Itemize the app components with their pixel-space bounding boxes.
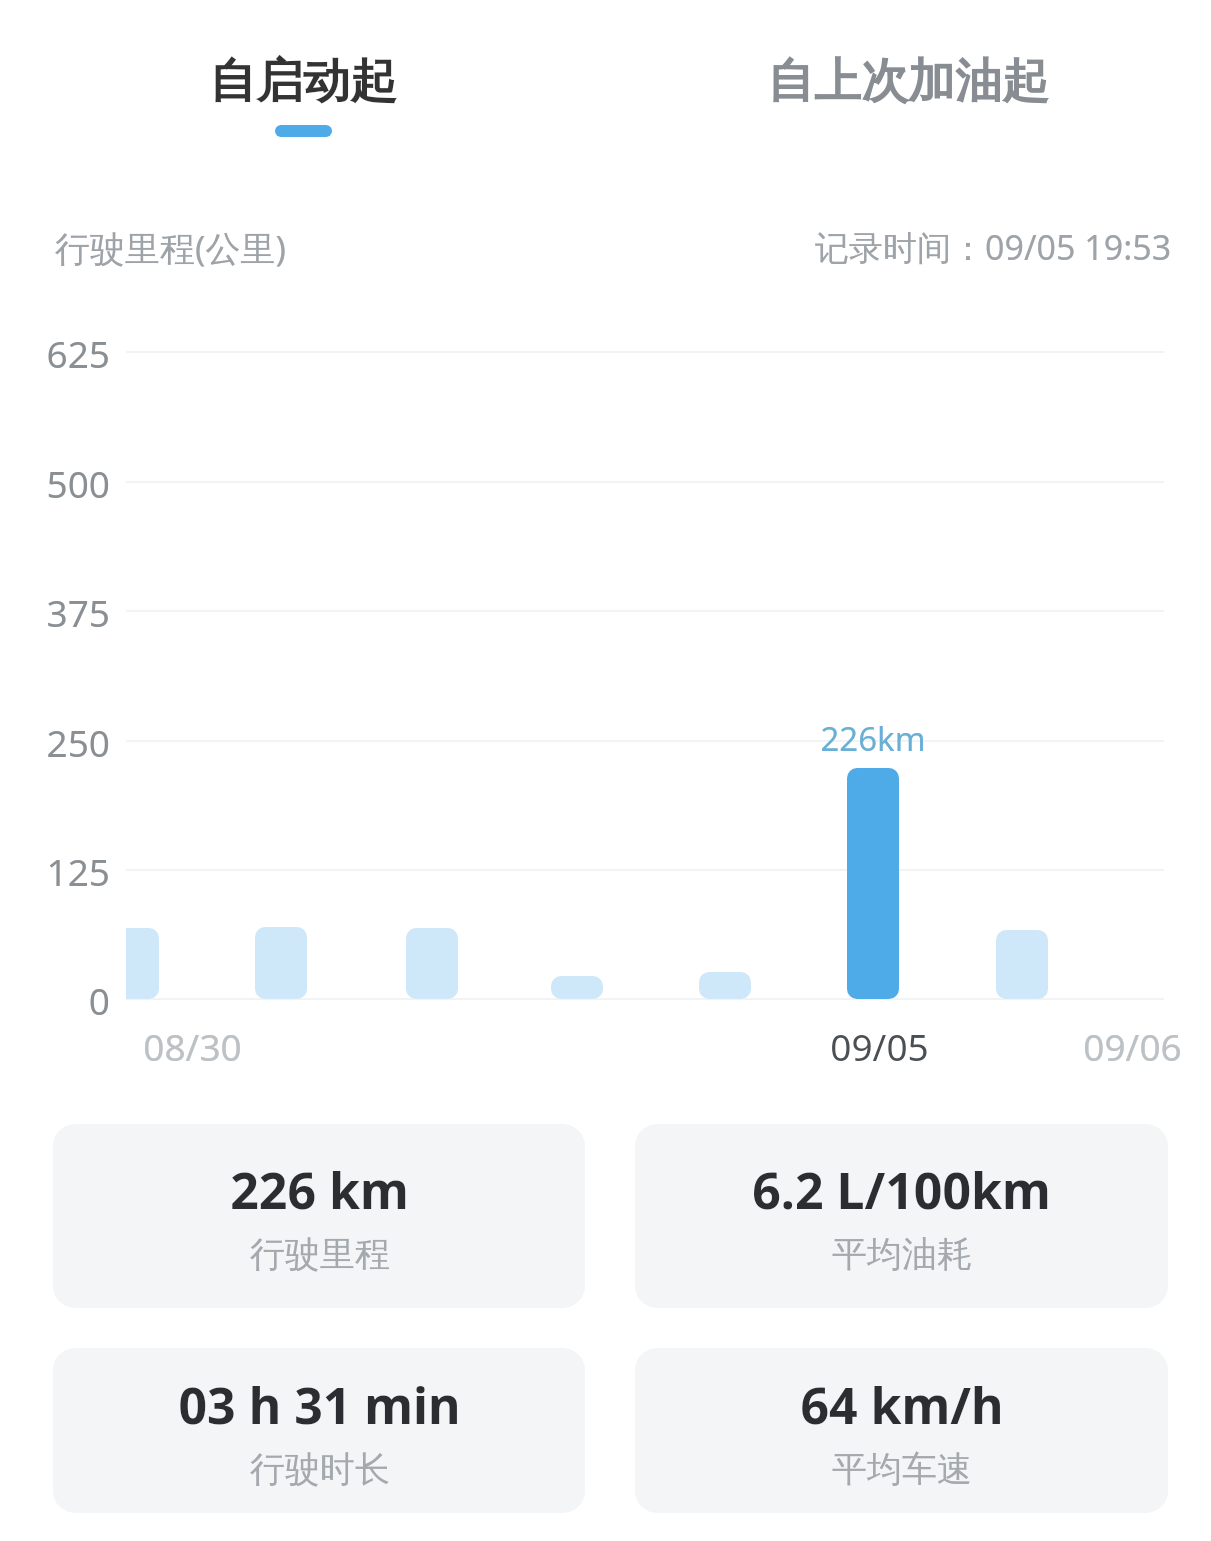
staticText: 08/30 <box>143 1021 242 1071</box>
staticText: 记录时间：09/05 19:53 <box>815 224 1172 270</box>
staticText: 64 km/h <box>800 1371 1004 1439</box>
staticText: 自启动起 <box>209 52 397 111</box>
staticText: 自上次加油起 <box>767 52 1049 111</box>
button[interactable]: 64 km/h <box>635 1348 1168 1513</box>
button[interactable]: 自启动起 <box>0 0 605 165</box>
staticText: 09/05 <box>830 1021 929 1071</box>
button[interactable]: 226 km <box>53 1124 585 1308</box>
staticText: 250 <box>46 717 110 767</box>
staticText: 6.2 L/100km <box>752 1156 1051 1224</box>
staticText: 行驶里程(公里) <box>55 224 287 272</box>
staticText: 500 <box>46 458 110 508</box>
button[interactable]: 自上次加油起 <box>605 0 1211 165</box>
staticText: 09/06 <box>1083 1021 1182 1071</box>
staticText: 625 <box>46 328 110 378</box>
staticText: 226 km <box>230 1156 409 1224</box>
staticText: 03 h 31 min <box>178 1371 461 1439</box>
staticText: 行驶时长 <box>250 1447 390 1491</box>
staticText: 125 <box>46 846 110 896</box>
staticText: 226km <box>820 716 926 761</box>
staticText: 375 <box>46 587 110 637</box>
button[interactable]: 6.2 L/100km <box>635 1124 1168 1308</box>
staticText: 平均车速 <box>832 1447 972 1491</box>
staticText: 0 <box>88 975 110 1025</box>
button[interactable]: 03 h 31 min <box>53 1348 585 1513</box>
staticText: 行驶里程 <box>250 1232 390 1276</box>
staticText: 平均油耗 <box>832 1232 972 1276</box>
